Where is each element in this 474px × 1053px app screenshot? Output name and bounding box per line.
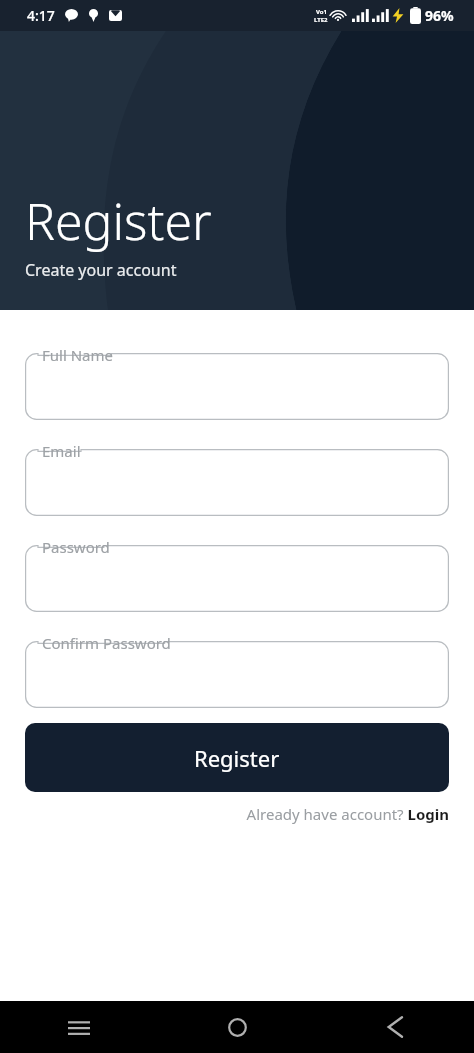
- staticText: Email: [42, 441, 81, 461]
- staticText: Register: [25, 187, 212, 255]
- button[interactable]: Full Name: [25, 353, 449, 420]
- button[interactable]: Home: [158, 1001, 316, 1053]
- button[interactable]: Email: [25, 449, 449, 516]
- staticText: LTE2: [314, 16, 328, 24]
- staticText: Create your account: [25, 259, 177, 281]
- staticText: Full Name: [42, 345, 113, 365]
- staticText: Already have account? Login: [246, 804, 449, 824]
- button[interactable]: Register: [25, 723, 449, 792]
- button[interactable]: Already have account? Login: [246, 804, 449, 824]
- staticText: Password: [42, 537, 110, 557]
- staticText: 4:17: [27, 6, 55, 25]
- button[interactable]: Recent apps: [0, 1001, 158, 1053]
- staticText: Vo1: [316, 8, 327, 16]
- button[interactable]: Confirm Password: [25, 641, 449, 708]
- staticText: 96%: [425, 6, 454, 25]
- staticText: Register: [194, 743, 280, 773]
- button[interactable]: Password: [25, 545, 449, 612]
- staticText: Confirm Password: [42, 633, 171, 653]
- button[interactable]: Back: [316, 1001, 474, 1053]
